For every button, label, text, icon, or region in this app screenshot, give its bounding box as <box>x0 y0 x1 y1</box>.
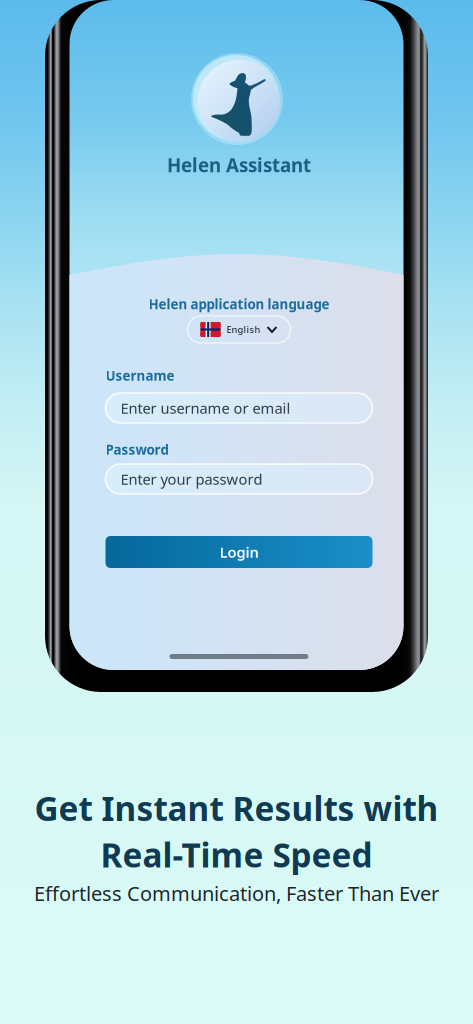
button[interactable]: Login <box>105 536 372 568</box>
button[interactable]: Enter your password <box>105 464 372 494</box>
staticText: Username <box>105 367 174 384</box>
staticText: Helen application language <box>148 295 329 313</box>
staticText: Real-Time Speed <box>100 832 372 877</box>
staticText: Enter username or email <box>120 398 290 418</box>
staticText: Password <box>105 441 168 458</box>
staticText: Login <box>219 542 258 562</box>
button[interactable]: Enter username or email <box>105 393 372 423</box>
button[interactable]: English <box>187 316 290 343</box>
staticText: English <box>226 323 260 336</box>
staticText: Helen Assistant <box>167 153 311 177</box>
staticText: Enter your password <box>120 469 262 489</box>
staticText: Effortless Communication, Faster Than Ev… <box>34 880 439 907</box>
staticText: Get Instant Results with <box>34 786 438 830</box>
